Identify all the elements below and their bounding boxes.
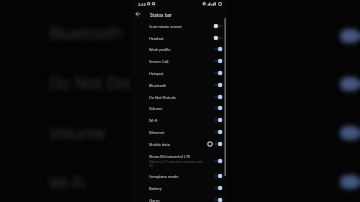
button[interactable]: Off <box>213 23 223 29</box>
button[interactable]: Auto-rotate screen <box>130 20 227 32</box>
staticText: Do Not Disturb <box>149 95 176 100</box>
button[interactable]: Settings <box>207 141 213 147</box>
button[interactable]: On <box>213 105 223 111</box>
staticText: Bluetooth <box>49 21 123 43</box>
button[interactable]: Bluetooth <box>130 79 227 91</box>
button[interactable]: Work profile <box>130 43 227 55</box>
staticText: 2:46 <box>138 2 146 7</box>
button[interactable]: Wi-Fi <box>130 114 227 126</box>
staticText: Wi-Fi <box>49 171 86 193</box>
staticText: Headset <box>149 36 164 41</box>
staticText: Do Not Disturb <box>49 71 162 93</box>
button[interactable]: On <box>213 94 223 100</box>
staticText: Status bar <box>150 12 172 18</box>
staticText: Ethernet <box>149 130 165 135</box>
staticText: Volume <box>149 106 163 111</box>
staticText: Hotspot <box>149 71 164 76</box>
staticText: Bluetooth <box>149 83 167 88</box>
button[interactable]: Ethernet <box>130 126 227 138</box>
button[interactable]: Mobile data <box>130 138 227 150</box>
button[interactable]: Screen Call <box>130 55 227 67</box>
button[interactable]: Do Not Disturb <box>130 91 227 103</box>
button[interactable]: On <box>213 82 223 88</box>
staticText: Auto-rotate screen <box>149 24 182 29</box>
staticText: Mobile data <box>149 142 170 147</box>
button[interactable]: On <box>213 58 223 64</box>
button[interactable]: Alarm <box>130 194 227 202</box>
button[interactable]: Show 4G instead of LTE <box>130 150 227 171</box>
button[interactable]: On <box>213 197 223 202</box>
button[interactable]: On <box>213 46 223 52</box>
button[interactable]: Volume <box>130 102 227 114</box>
button[interactable]: On <box>213 158 223 164</box>
staticText: Replaces LTE statusbar indicators with 4… <box>149 160 204 168</box>
button[interactable]: On <box>213 129 223 135</box>
button[interactable]: On <box>213 141 223 147</box>
staticText: Alarm <box>149 198 160 202</box>
button[interactable]: On <box>213 173 223 179</box>
button[interactable]: Off <box>213 35 223 41</box>
staticText: Screen Call <box>149 59 169 64</box>
staticText: Aeroplane mode <box>149 174 179 179</box>
staticText: Wi-Fi <box>149 118 158 123</box>
button[interactable]: Aeroplane mode <box>130 170 227 182</box>
button[interactable]: Back <box>134 10 141 17</box>
staticText: Work profile <box>149 47 171 52</box>
staticText: Show 4G instead of LTE <box>149 154 191 159</box>
button[interactable]: Headset <box>130 32 227 44</box>
button[interactable]: On <box>213 70 223 76</box>
button[interactable]: Battery <box>130 182 227 194</box>
button[interactable]: Hotspot <box>130 67 227 79</box>
staticText: Battery <box>149 186 162 191</box>
staticText: Volume <box>49 121 106 143</box>
button[interactable]: On <box>213 185 223 191</box>
button[interactable]: On <box>213 117 223 123</box>
